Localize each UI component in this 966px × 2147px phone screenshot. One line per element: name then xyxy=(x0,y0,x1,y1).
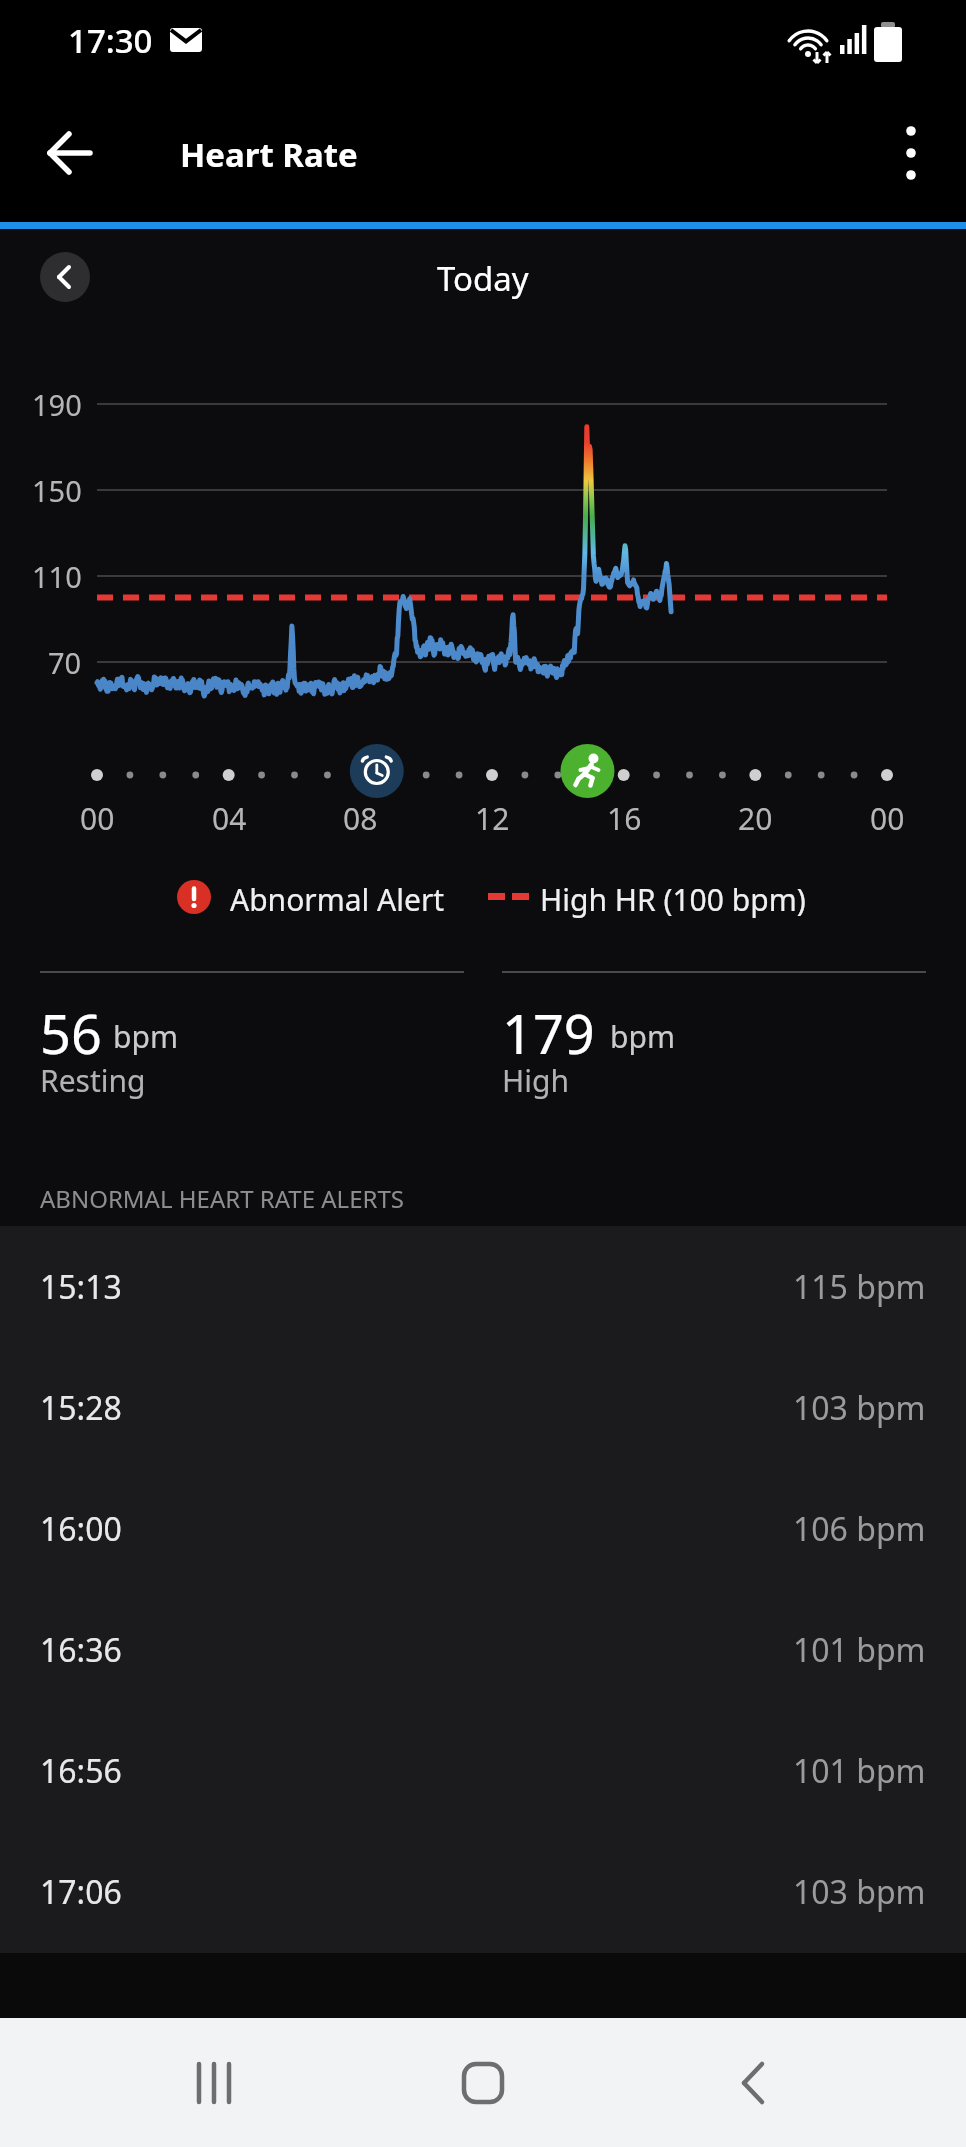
staticText: bpm xyxy=(610,1016,675,1057)
button[interactable] xyxy=(178,2047,250,2119)
staticText: 04 xyxy=(212,798,247,838)
button[interactable]: 16:36 xyxy=(0,1589,966,1710)
staticText: 190 xyxy=(32,385,82,423)
staticText: 17:30 xyxy=(68,18,153,63)
staticText: 56 xyxy=(40,996,102,1070)
staticText: High xyxy=(502,1060,569,1101)
staticText: Resting xyxy=(40,1060,146,1101)
button[interactable]: 15:28 xyxy=(0,1347,966,1468)
staticText: bpm xyxy=(113,1016,178,1057)
staticText: 115 bpm xyxy=(793,1265,926,1309)
staticText: 15:13 xyxy=(40,1265,122,1309)
staticText: 00 xyxy=(870,798,905,838)
staticText: 103 bpm xyxy=(793,1870,926,1914)
button[interactable]: 15:13 xyxy=(0,1226,966,1347)
button[interactable] xyxy=(719,2047,791,2119)
staticText: 101 bpm xyxy=(793,1749,926,1793)
staticText: 16 xyxy=(607,798,642,838)
staticText: 16:00 xyxy=(40,1507,122,1551)
staticText: Today xyxy=(437,256,529,301)
staticText: 16:56 xyxy=(40,1749,122,1793)
button[interactable] xyxy=(880,117,952,189)
button[interactable]: 17:06 xyxy=(0,1831,966,1952)
staticText: 20 xyxy=(738,798,773,838)
button[interactable] xyxy=(40,252,90,302)
button[interactable]: 16:00 xyxy=(0,1468,966,1589)
staticText: 17:06 xyxy=(40,1870,122,1914)
staticText: 00 xyxy=(80,798,115,838)
staticText: High HR (100 bpm) xyxy=(540,879,806,920)
button[interactable] xyxy=(447,2047,519,2119)
staticText: 15:28 xyxy=(40,1386,122,1430)
staticText: 16:36 xyxy=(40,1628,122,1672)
button[interactable] xyxy=(34,117,106,189)
staticText: 179 xyxy=(502,996,595,1070)
staticText: 103 bpm xyxy=(793,1386,926,1430)
staticText: 150 xyxy=(32,471,82,509)
staticText: 101 bpm xyxy=(793,1628,926,1672)
staticText: 70 xyxy=(48,643,82,681)
staticText: ABNORMAL HEART RATE ALERTS xyxy=(40,1182,404,1215)
staticText: 110 xyxy=(32,557,82,595)
staticText: 106 bpm xyxy=(793,1507,926,1551)
staticText: 12 xyxy=(475,798,510,838)
staticText: Heart Rate xyxy=(180,132,358,177)
staticText: Abnormal Alert xyxy=(230,879,445,920)
staticText: 08 xyxy=(343,798,378,838)
button[interactable]: 16:56 xyxy=(0,1710,966,1831)
